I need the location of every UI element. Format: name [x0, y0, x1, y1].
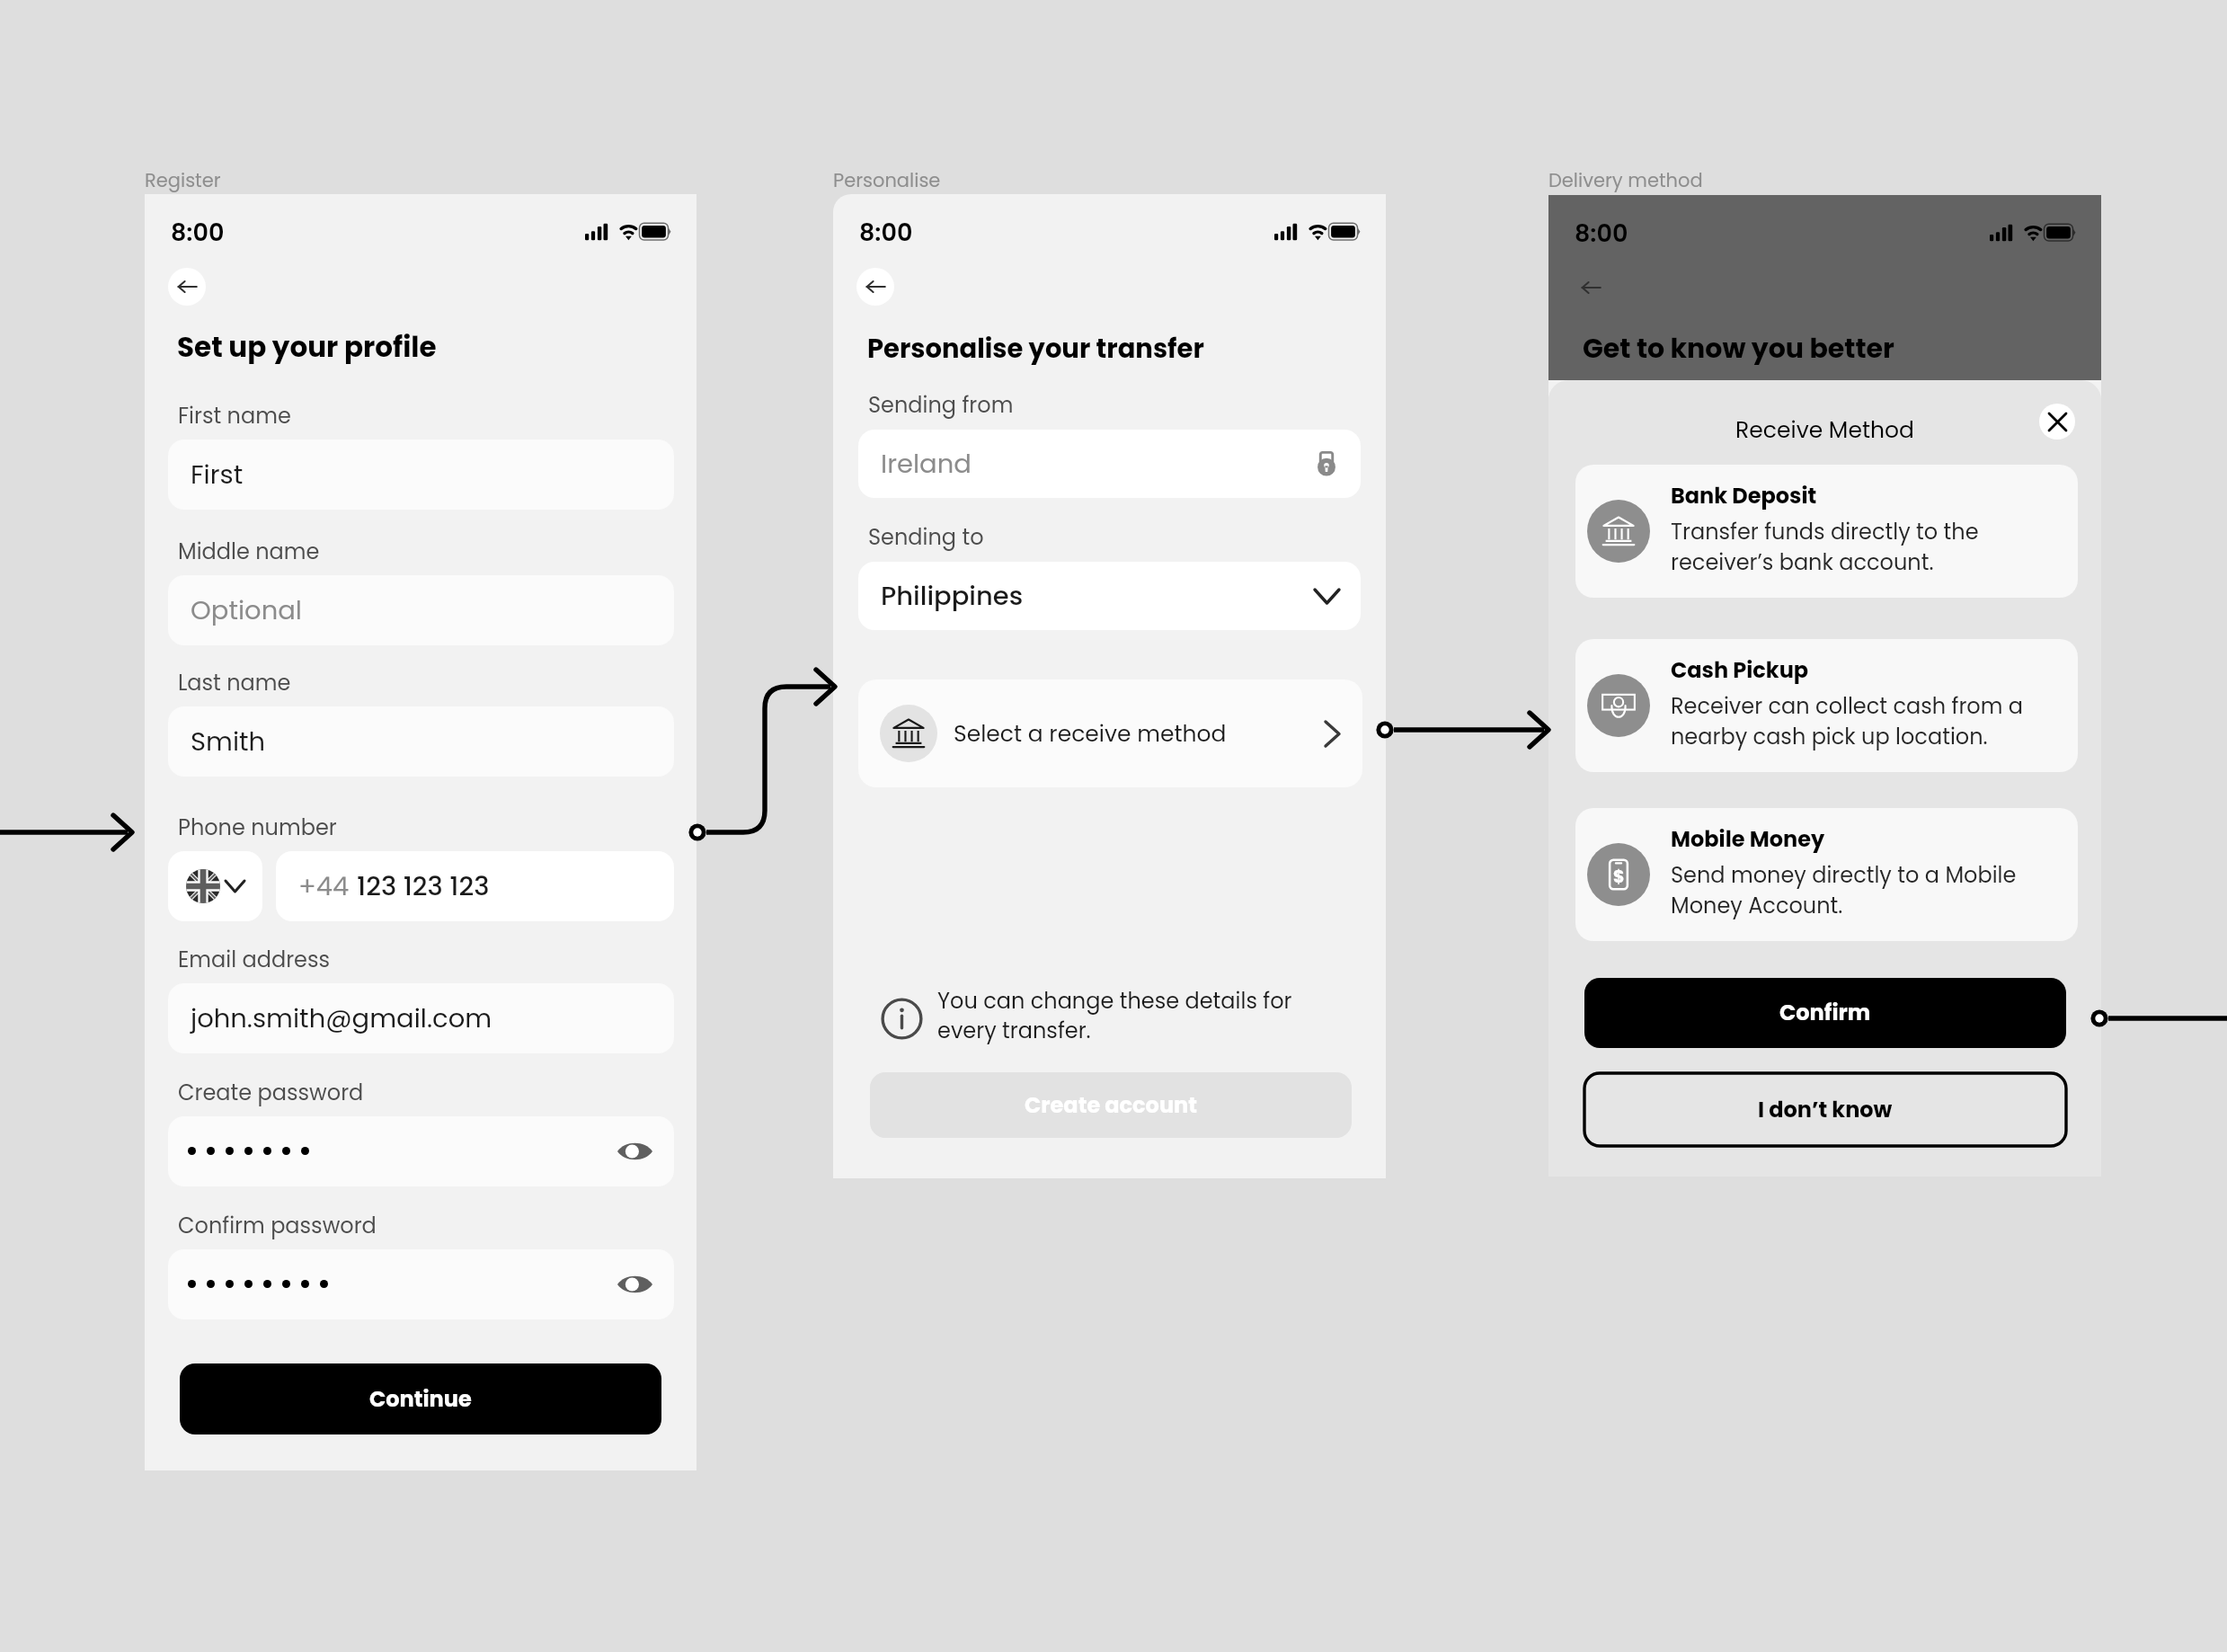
- button[interactable]: Show password: [168, 1116, 674, 1186]
- button[interactable]: Ireland: [858, 430, 1361, 498]
- staticText: Delivery method: [1548, 167, 1703, 193]
- staticText: First: [191, 457, 244, 493]
- staticText: Sending from: [868, 390, 1014, 421]
- staticText: I don’t know: [1758, 1095, 1893, 1125]
- button[interactable]: Back: [168, 268, 206, 306]
- staticText: Confirm: [1779, 998, 1871, 1028]
- staticText: Create account: [1025, 1090, 1197, 1121]
- staticText: $: [1613, 865, 1625, 889]
- button[interactable]: Select a receive method: [858, 679, 1362, 787]
- button[interactable]: Confirm: [1584, 978, 2066, 1048]
- staticText: Cash Pickup: [1671, 655, 1809, 686]
- button[interactable]: I don’t know: [1584, 1073, 2066, 1146]
- button[interactable]: Bank Deposit: [1575, 465, 2078, 598]
- staticText: You can change these details for every t…: [937, 986, 1292, 1046]
- staticText: Email address: [178, 945, 331, 975]
- staticText: 8:00: [859, 216, 913, 250]
- button[interactable]: Back: [856, 268, 894, 306]
- staticText: Last name: [178, 668, 291, 698]
- staticText: Receive Method: [1548, 414, 2101, 446]
- staticText: Receiver can collect cash from a nearby …: [1671, 691, 2024, 751]
- staticText: First name: [178, 401, 291, 431]
- staticText: Optional: [191, 592, 302, 629]
- button[interactable]: john.smith@gmail.com: [168, 983, 674, 1053]
- staticText: Create password: [178, 1078, 364, 1108]
- staticText: Get to know you better: [1583, 330, 1894, 368]
- staticText: Phone number: [178, 813, 337, 843]
- staticText: 8:00: [1575, 217, 1628, 251]
- button[interactable]: Cash Pickup: [1575, 639, 2078, 772]
- button[interactable]: $: [1575, 808, 2078, 941]
- button[interactable]: Create account: [870, 1072, 1352, 1138]
- button[interactable]: Show password: [168, 1249, 674, 1319]
- button[interactable]: Show password: [611, 1133, 658, 1169]
- staticText: Continue: [369, 1384, 472, 1415]
- staticText: Personalise: [833, 167, 941, 193]
- staticText: Personalise your transfer: [867, 331, 1204, 368]
- staticText: john.smith@gmail.com: [191, 1000, 492, 1037]
- button[interactable]: +44: [276, 851, 674, 921]
- button[interactable]: Show password: [611, 1266, 658, 1302]
- staticText: Ireland: [881, 446, 972, 483]
- staticText: Transfer funds directly to the receiver’…: [1671, 517, 1979, 577]
- staticText: Smith: [191, 724, 266, 760]
- staticText: Select a receive method: [954, 718, 1227, 750]
- button[interactable]: Back: [1572, 269, 1610, 306]
- staticText: Register: [145, 167, 221, 193]
- staticText: Mobile Money: [1671, 824, 1825, 855]
- staticText: Send money directly to a Mobile Money Ac…: [1671, 860, 2017, 920]
- button[interactable]: First: [168, 440, 674, 510]
- staticText: Bank Deposit: [1671, 481, 1817, 511]
- button[interactable]: Smith: [168, 706, 674, 777]
- staticText: Set up your profile: [177, 327, 437, 366]
- button[interactable]: Country code: [168, 851, 262, 921]
- button[interactable]: Continue: [180, 1363, 661, 1434]
- staticText: Middle name: [178, 537, 320, 567]
- button[interactable]: Close: [2039, 404, 2075, 440]
- staticText: +44: [298, 868, 357, 905]
- staticText: 123 123 123: [357, 868, 490, 905]
- button[interactable]: Philippines: [858, 562, 1361, 630]
- staticText: 8:00: [171, 216, 225, 250]
- staticText: Sending to: [868, 522, 984, 553]
- button[interactable]: Optional: [168, 575, 674, 645]
- staticText: Philippines: [881, 578, 1024, 615]
- staticText: Confirm password: [178, 1211, 377, 1241]
